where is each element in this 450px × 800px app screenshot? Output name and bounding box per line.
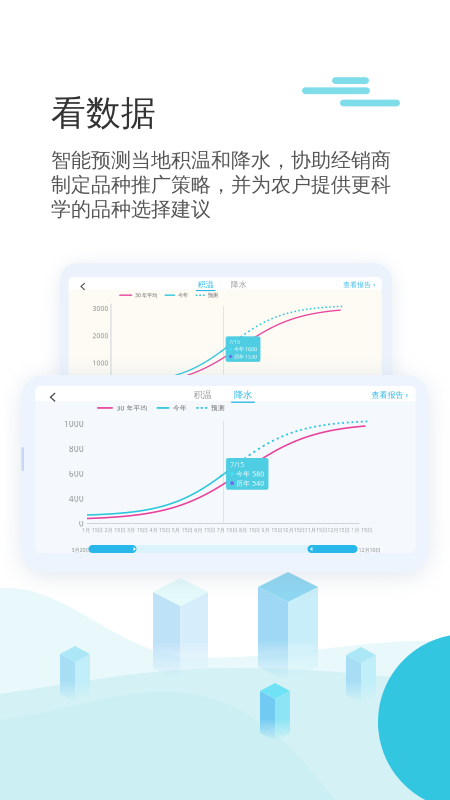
- staticText: 积温: [198, 280, 214, 290]
- staticText: 6月: [194, 526, 202, 534]
- staticText: 15日: [114, 526, 125, 534]
- staticText: 预测: [208, 292, 218, 298]
- staticText: 15日: [204, 526, 215, 534]
- staticText: 今年 580: [236, 469, 264, 478]
- staticText: 查看报告 ›: [371, 389, 407, 400]
- staticText: 1月: [351, 526, 359, 534]
- staticText: 3000: [92, 304, 108, 313]
- button[interactable]: 积温: [192, 279, 220, 292]
- staticText: 5月: [172, 526, 180, 534]
- staticText: 15日: [189, 392, 197, 398]
- staticText: 15日: [159, 526, 170, 534]
- staticText: 15日: [361, 526, 372, 534]
- staticText: 8月: [239, 526, 247, 534]
- staticText: 0: [79, 518, 84, 529]
- staticText: 今年: [173, 404, 187, 412]
- staticText: 历年 540: [236, 479, 264, 488]
- staticText: 10月: [282, 526, 293, 534]
- staticText: 6月: [200, 392, 206, 398]
- button[interactable]: 降水: [226, 388, 260, 404]
- button[interactable]: Back: [78, 280, 88, 294]
- button[interactable]: 积温: [185, 388, 219, 404]
- staticText: 4月: [149, 526, 157, 534]
- staticText: 7/15: [229, 338, 240, 345]
- staticText: 智能预测当地积温和降水，协助经销商制定品种推广策略，并为农户提供更科学的品种选择…: [51, 148, 391, 222]
- staticText: 查看报告 ›: [343, 280, 375, 289]
- staticText: 今年 1600: [234, 346, 257, 353]
- staticText: 积温: [193, 389, 211, 401]
- staticText: 15日: [316, 526, 327, 534]
- staticText: 7/15: [230, 460, 244, 469]
- staticText: 400: [69, 493, 84, 504]
- staticText: 15日: [226, 526, 237, 534]
- staticText: 30 年平均: [135, 292, 157, 299]
- staticText: 15日: [137, 526, 148, 534]
- staticText: 15日: [208, 392, 216, 398]
- staticText: 800: [69, 444, 84, 454]
- staticText: 1000: [64, 419, 84, 429]
- staticText: 2月: [104, 526, 112, 534]
- staticText: 15日: [181, 526, 192, 534]
- staticText: 15日: [338, 526, 349, 534]
- staticText: 看数据: [51, 92, 156, 135]
- staticText: 历年 1530: [234, 353, 257, 360]
- staticText: 1月: [82, 526, 90, 534]
- button[interactable]: 查看报告 ›: [336, 280, 375, 289]
- button[interactable]: 降水: [225, 279, 253, 292]
- staticText: 600: [69, 468, 84, 479]
- staticText: 3月: [127, 526, 135, 534]
- staticText: 3月20日: [71, 546, 90, 553]
- staticText: 降水: [234, 389, 252, 401]
- staticText: 12月: [327, 526, 338, 534]
- staticText: 1000: [92, 358, 108, 367]
- button[interactable]: Back: [46, 389, 60, 406]
- staticText: 预测: [211, 404, 225, 412]
- staticText: 降水: [231, 280, 247, 290]
- button[interactable]: 查看报告 ›: [359, 389, 407, 400]
- staticText: 7月: [217, 526, 225, 534]
- staticText: 今年: [178, 292, 188, 298]
- staticText: 9月: [261, 526, 269, 534]
- staticText: 12月10日: [358, 546, 380, 553]
- staticText: 11月: [305, 526, 316, 534]
- staticText: 30 年平均: [116, 403, 147, 412]
- staticText: 15日: [92, 526, 103, 534]
- staticText: 15日: [294, 526, 305, 534]
- staticText: 15日: [249, 526, 260, 534]
- staticText: 8月: [237, 392, 243, 398]
- staticText: 2000: [92, 331, 108, 340]
- staticText: 15日: [271, 526, 282, 534]
- staticText: 15日: [245, 392, 253, 398]
